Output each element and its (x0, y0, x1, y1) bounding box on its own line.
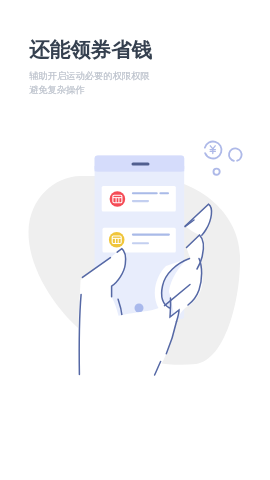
staticText: 辅助开启运动必要的权限权限 避免复杂操作 (29, 70, 150, 96)
staticText: 还能领券省钱 (29, 37, 152, 63)
